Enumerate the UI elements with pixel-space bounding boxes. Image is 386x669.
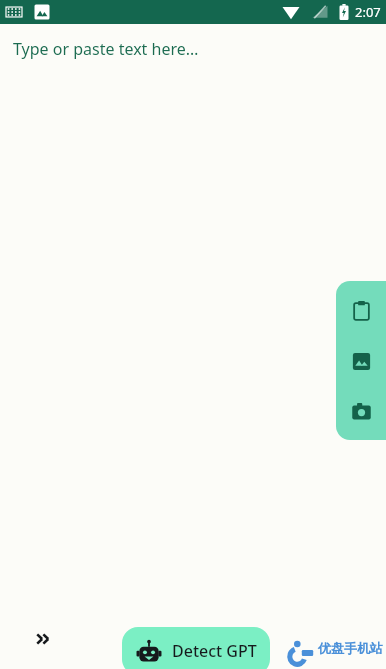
staticText: Detect GPT [172, 640, 257, 662]
button[interactable]: Expand menu [24, 620, 62, 658]
button[interactable]: Take photo [339, 389, 383, 433]
staticText: 2:07 [355, 3, 381, 21]
button[interactable]: Type or paste text here… [13, 38, 199, 60]
staticText: 优盘手机站 [318, 640, 383, 656]
button[interactable]: Paste from clipboard [339, 288, 383, 332]
button[interactable]: Pick image [339, 339, 383, 383]
button[interactable]: Detect GPT [122, 627, 270, 669]
